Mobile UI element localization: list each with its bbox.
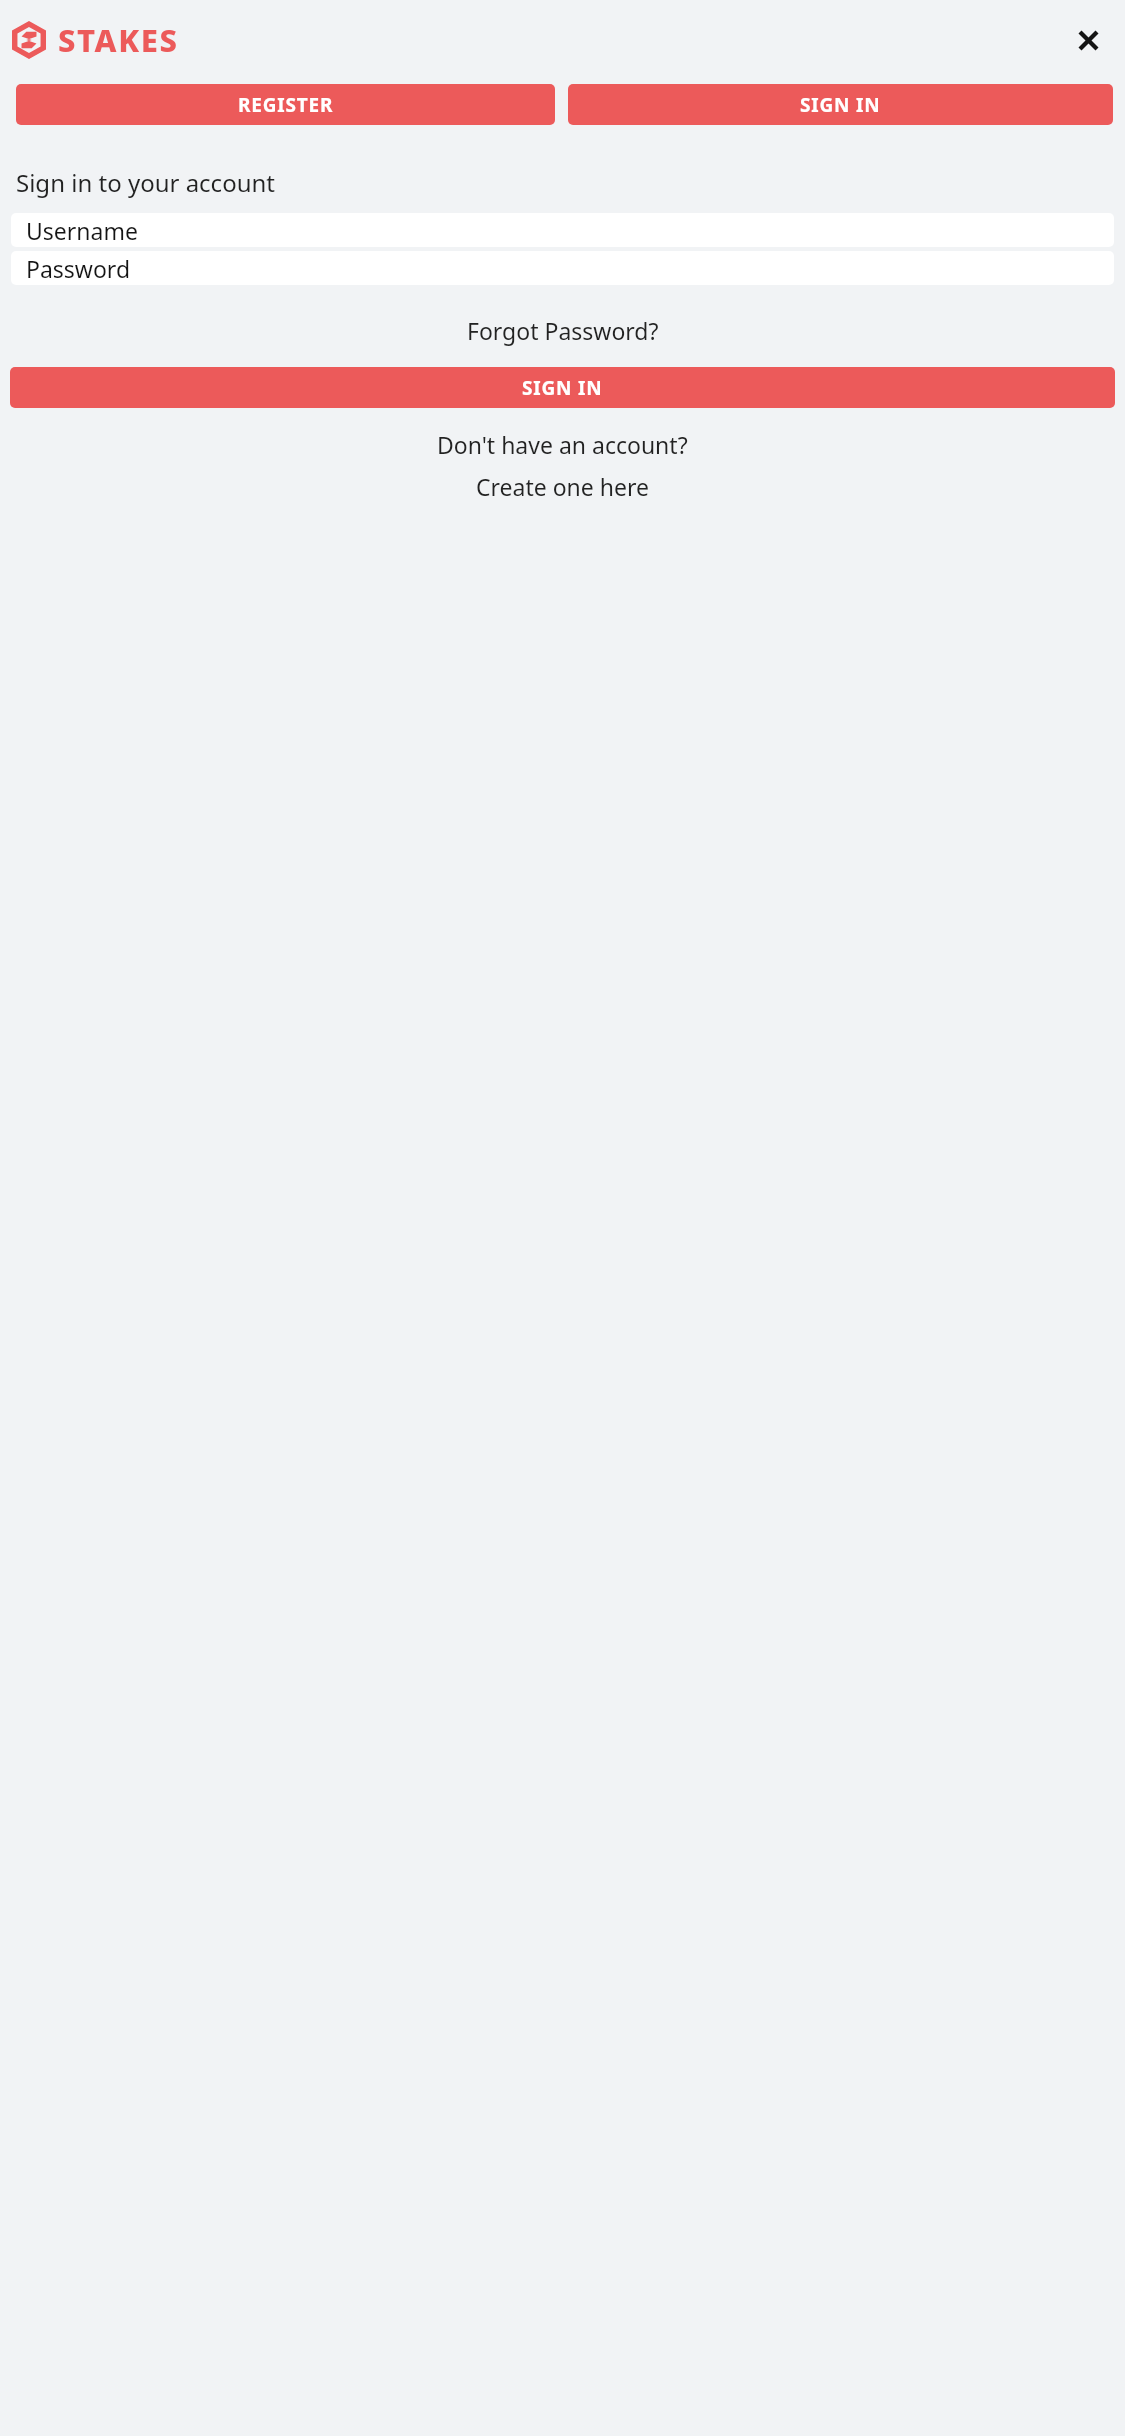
staticText: Password xyxy=(26,253,131,284)
staticText: Sign in to your account xyxy=(16,166,275,199)
staticText: SIGN IN xyxy=(522,375,603,401)
staticText: Forgot Password? xyxy=(467,315,659,346)
button[interactable]: SIGN IN xyxy=(568,84,1113,125)
staticText: Username xyxy=(26,215,138,246)
button[interactable]: Forgot Password? xyxy=(457,311,669,350)
button[interactable]: Create one here xyxy=(466,467,659,506)
button[interactable]: Username xyxy=(11,213,1114,247)
button[interactable]: Close xyxy=(1061,13,1115,67)
button[interactable]: REGISTER xyxy=(16,84,555,125)
staticText: Don't have an account? xyxy=(437,429,688,460)
staticText: STAKES xyxy=(58,19,179,61)
staticText: SIGN IN xyxy=(800,92,881,118)
button[interactable]: SIGN IN xyxy=(10,367,1115,408)
staticText: REGISTER xyxy=(238,92,334,118)
button[interactable]: Password xyxy=(11,251,1114,285)
staticText: Create one here xyxy=(476,471,649,502)
